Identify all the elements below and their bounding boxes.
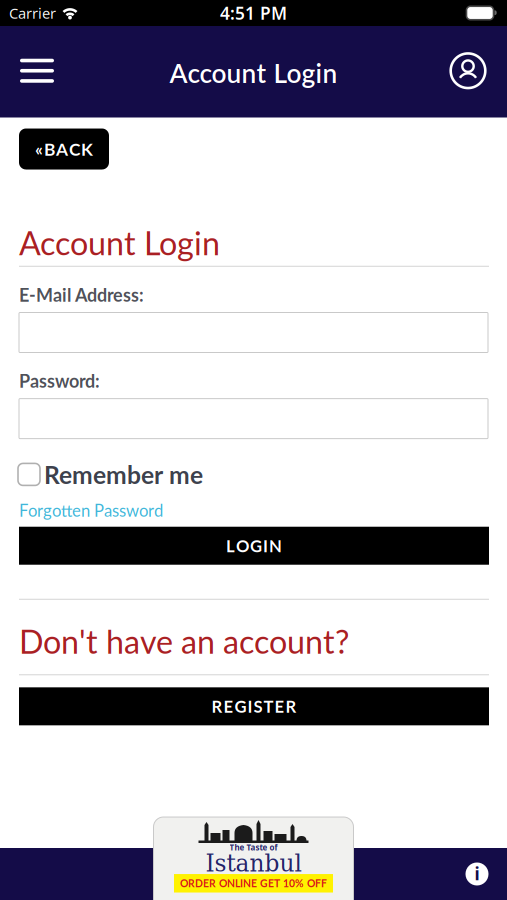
staticText: Account Login [19,223,220,262]
button[interactable]: Menu [0,41,68,101]
button[interactable]: R E G I S T E R [19,687,489,725]
staticText: Istanbul [205,850,301,877]
staticText: The Taste of [229,842,277,853]
button[interactable]: L O G I N [19,527,489,565]
staticText: Account Login [169,57,337,88]
staticText: Forgotten Password [19,500,163,520]
staticText: « B A C K [35,139,93,159]
staticText: Don't have an account? [19,622,349,661]
button[interactable]: Remember me [18,460,203,489]
staticText: L O G I N [226,536,282,556]
staticText: Remember me [44,460,203,489]
staticText: Password: [19,370,100,392]
button[interactable]: Back [19,128,109,169]
staticText: E-Mail Address: [19,284,144,305]
staticText: Carrier [9,3,56,23]
staticText: R E G I S T E R [211,696,296,716]
button[interactable]: The Taste of Istanbul — Order online, ge… [153,817,353,900]
staticText: ORDER ONLINE GET 10% OFF [180,877,327,890]
button[interactable]: Account [449,41,507,101]
button[interactable]: Info [465,862,507,886]
staticText: i [474,862,479,885]
button[interactable]: Forgotten Password [19,500,163,520]
staticText: 4:51 PM [220,1,287,24]
